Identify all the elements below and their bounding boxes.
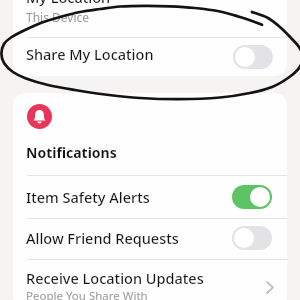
staticText: Allow Friend Requests xyxy=(26,228,232,248)
staticText: People You Share With xyxy=(26,288,148,300)
button[interactable]: Item Safety Alerts xyxy=(13,176,287,218)
button[interactable]: Allow Friend Requests xyxy=(232,226,272,250)
button[interactable]: Receive Location Updates xyxy=(13,260,287,300)
button[interactable]: Share My Location xyxy=(233,45,273,69)
button[interactable]: Item Safety Alerts xyxy=(232,185,272,209)
staticText: Item Safety Alerts xyxy=(26,187,232,207)
staticText: Notifications xyxy=(26,143,117,162)
staticText: My Location xyxy=(26,0,111,7)
button[interactable]: My Location xyxy=(13,0,287,37)
staticText: This Device xyxy=(26,9,90,25)
staticText: Share My Location xyxy=(26,44,233,64)
button[interactable]: Allow Friend Requests xyxy=(13,218,287,258)
staticText: Receive Location Updates xyxy=(26,268,204,288)
button[interactable]: Share My Location xyxy=(13,34,287,73)
